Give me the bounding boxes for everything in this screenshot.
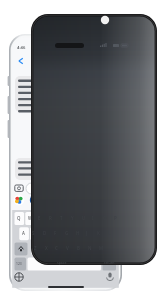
staticText: A	[22, 230, 25, 236]
button[interactable]: Space	[27, 255, 101, 269]
staticText: X	[45, 245, 48, 251]
button[interactable]: Video call	[101, 53, 116, 67]
staticText: Z	[34, 245, 37, 251]
staticText: return	[104, 260, 115, 265]
staticText: Q	[17, 215, 21, 221]
staticText: W	[28, 215, 33, 221]
button[interactable]: Dictation	[103, 271, 116, 284]
staticText: S	[32, 230, 35, 236]
button[interactable]: Back	[15, 54, 26, 68]
button[interactable]: Return	[102, 255, 116, 269]
button[interactable]: Message input field	[26, 183, 116, 195]
button[interactable]: Contact profile	[60, 50, 77, 68]
button[interactable]: Switch keyboard language	[13, 271, 26, 284]
button[interactable]: Camera	[13, 182, 26, 195]
staticText: space	[57, 260, 67, 265]
staticText: 4:46	[17, 45, 26, 51]
staticText: 5G	[114, 44, 119, 48]
staticText: 123	[16, 261, 22, 265]
